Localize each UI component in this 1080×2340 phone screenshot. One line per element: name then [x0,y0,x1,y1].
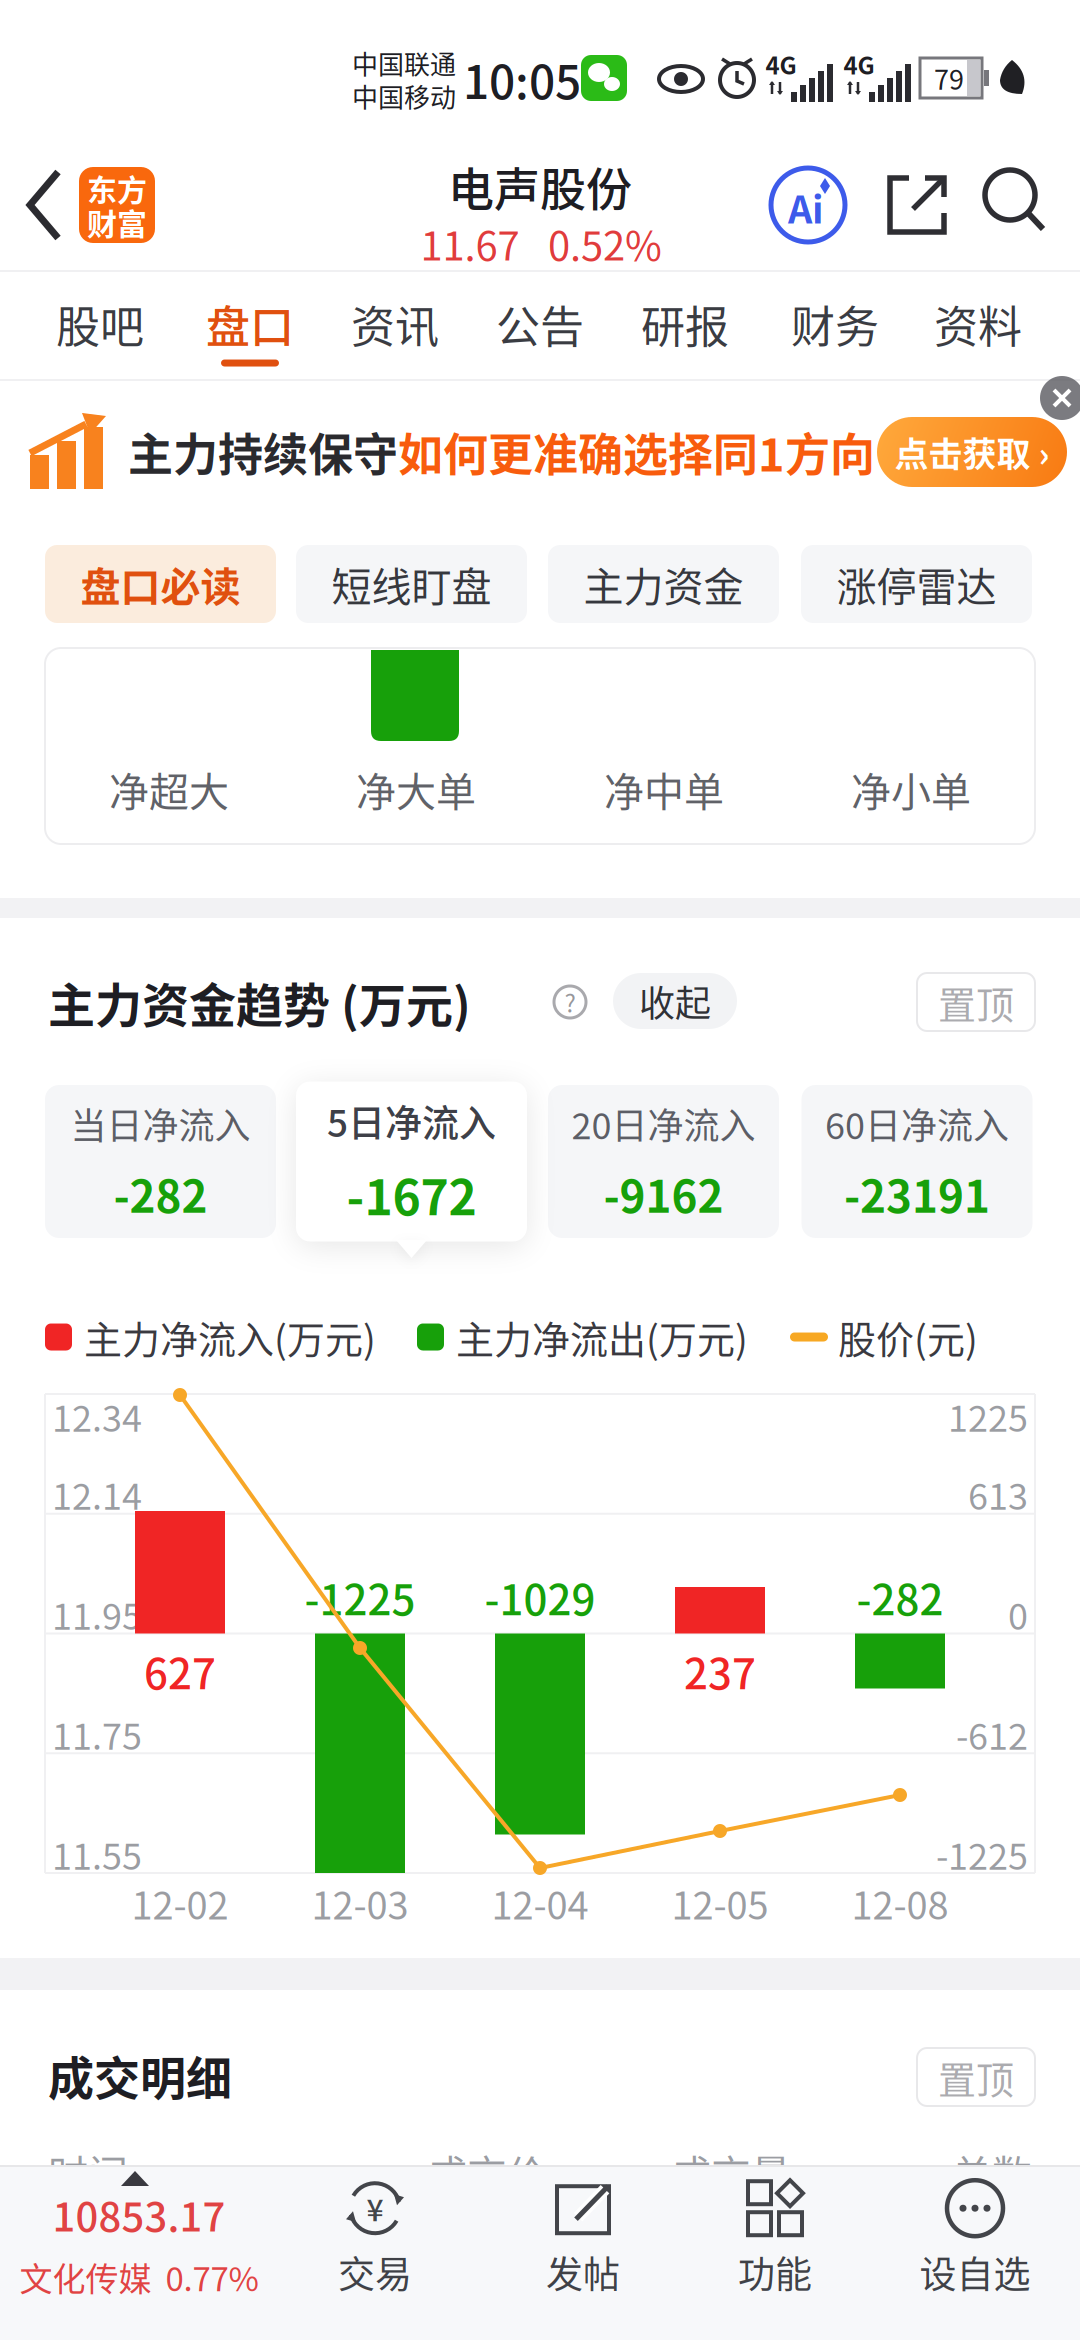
staticText: 功能 [738,2245,812,2299]
staticText: 股价(元) [838,1309,978,1364]
staticText: 主力净流入(万元) [84,1309,376,1364]
button[interactable]: 置顶 [917,973,1035,1031]
button[interactable]: 主力资金 [548,545,779,623]
button[interactable]: 盘口 [190,276,310,372]
staticText: 成交明细 [48,2042,232,2108]
staticText: 东方 [87,166,147,210]
button[interactable]: 公告 [480,276,600,372]
button[interactable]: 5日净流入 [296,1081,527,1241]
staticText: 60日净流入 [825,1098,1009,1150]
button[interactable] [879,167,955,243]
staticText: 股吧 [56,292,144,356]
staticText: 置顶 [938,974,1014,1029]
staticText: 设自选 [919,2245,1030,2299]
staticText: -612 [956,1708,1028,1760]
button[interactable]: 盘口必读 [45,545,276,623]
button[interactable]: 点击获取 › [877,417,1067,487]
button[interactable]: ¥ [290,2178,460,2298]
button[interactable]: 财务 [775,276,895,372]
staticText: 1225 [948,1390,1028,1442]
button[interactable]: 短线盯盘 [296,545,527,623]
staticText: -282 [113,1162,207,1225]
staticText: 0.52% [548,214,662,272]
staticText: 627 [144,1641,216,1701]
staticText: 10:05 [463,46,581,112]
staticText: 文化传媒 0.77% [19,2253,258,2301]
staticText: ¥ [366,2186,383,2230]
staticText: 交易 [338,2245,412,2299]
staticText: 资讯 [351,292,439,356]
staticText: -1672 [346,1159,476,1229]
staticText: 11.55 [52,1828,142,1880]
button[interactable]: 研报 [625,276,745,372]
staticText: 净大单 [356,760,476,818]
button[interactable]: 收起 [613,973,737,1029]
staticText: 5日净流入 [327,1094,496,1148]
staticText: -23191 [844,1162,990,1225]
button[interactable]: 主力持续保守 [128,419,875,485]
button[interactable] [18,166,74,244]
staticText: 如何更准确选择同1方向 [398,419,875,485]
button[interactable]: 发帖 [498,2178,668,2298]
staticText: 电声股份 [448,153,632,219]
staticText: 主力资金趋势 (万元) [48,968,471,1036]
staticText: 当日净流入 [70,1098,250,1150]
staticText: 涨停雷达 [836,555,996,613]
staticText: 时间 [48,2143,128,2201]
staticText: 79 [934,58,964,98]
staticText: 11.75 [52,1708,142,1760]
staticText: 0 [1008,1588,1028,1640]
staticText: 财务 [791,292,879,356]
staticText: 收起 [639,975,711,1027]
staticText: ? [564,985,575,1019]
staticText: -1029 [484,1567,595,1627]
staticText: 中国联通 [352,44,456,82]
staticText: 研报 [641,292,729,356]
staticText: 主力持续保守 [128,419,398,485]
button[interactable]: 设自选 [890,2178,1060,2298]
staticText: 12.14 [52,1468,142,1520]
staticText: 净超大 [109,760,229,818]
staticText: 发帖 [546,2245,620,2299]
button[interactable]: 60日净流入 [801,1085,1032,1238]
button[interactable]: 资讯 [335,276,455,372]
staticText: 613 [968,1468,1028,1520]
staticText: 置顶 [938,2049,1014,2104]
staticText: 主力资金 [583,555,743,613]
staticText: Ai [788,179,824,234]
button[interactable] [30,413,106,491]
staticText: 净小单 [851,760,971,818]
staticText: 12-08 [851,1875,948,1930]
button[interactable]: 东方 [79,167,155,243]
staticText: 单数 [952,2143,1032,2201]
button[interactable]: 资料 [918,276,1038,372]
staticText: 237 [684,1641,756,1701]
button[interactable]: 当日净流入 [45,1085,276,1238]
staticText: 4G [843,47,874,81]
staticText: 20日净流入 [571,1098,755,1150]
button[interactable] [977,167,1049,235]
staticText: 4G [765,47,796,81]
staticText: 10853.17 [52,2185,225,2243]
staticText: 12-02 [131,1875,228,1930]
staticText: 12.34 [52,1390,142,1442]
staticText: 11.67 [420,214,519,272]
button[interactable]: 功能 [690,2178,860,2298]
button[interactable]: 股吧 [40,276,160,372]
button[interactable]: 20日净流入 [548,1085,779,1238]
staticText: 净中单 [604,760,724,818]
staticText: 资料 [934,292,1022,356]
button[interactable] [1039,375,1080,421]
button[interactable]: 涨停雷达 [801,545,1032,623]
button[interactable]: 10853.17 [4,2178,274,2308]
button[interactable]: 置顶 [917,2048,1035,2106]
staticText: 12-03 [311,1875,408,1930]
button[interactable]: Ai [768,165,848,245]
staticText: -282 [856,1567,943,1627]
staticText: -9162 [603,1162,723,1225]
staticText: 成交价 [427,2143,547,2201]
staticText: 公告 [496,292,584,356]
staticText: 中国移动 [352,77,456,115]
staticText: 12-05 [671,1875,768,1930]
staticText: 短线盯盘 [331,555,491,613]
